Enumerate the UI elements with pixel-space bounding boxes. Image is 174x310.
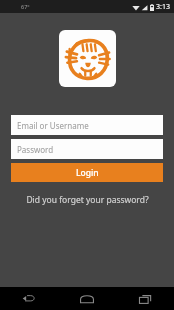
staticText: Password [17, 144, 54, 155]
staticText: Did you forget your password? [26, 194, 149, 206]
button[interactable]: Back [0, 287, 58, 310]
button[interactable]: Login [11, 163, 163, 182]
staticText: Login [76, 167, 99, 179]
staticText: 3:13 [156, 2, 170, 12]
button[interactable]: Did you forget your password? [11, 192, 163, 208]
button[interactable]: Email or Username [11, 115, 163, 135]
staticText: Email or Username [17, 120, 89, 131]
button[interactable]: Recent apps [116, 287, 174, 310]
staticText: 67° [21, 3, 30, 10]
button[interactable]: Home [58, 287, 116, 310]
button[interactable]: Password [11, 139, 163, 159]
